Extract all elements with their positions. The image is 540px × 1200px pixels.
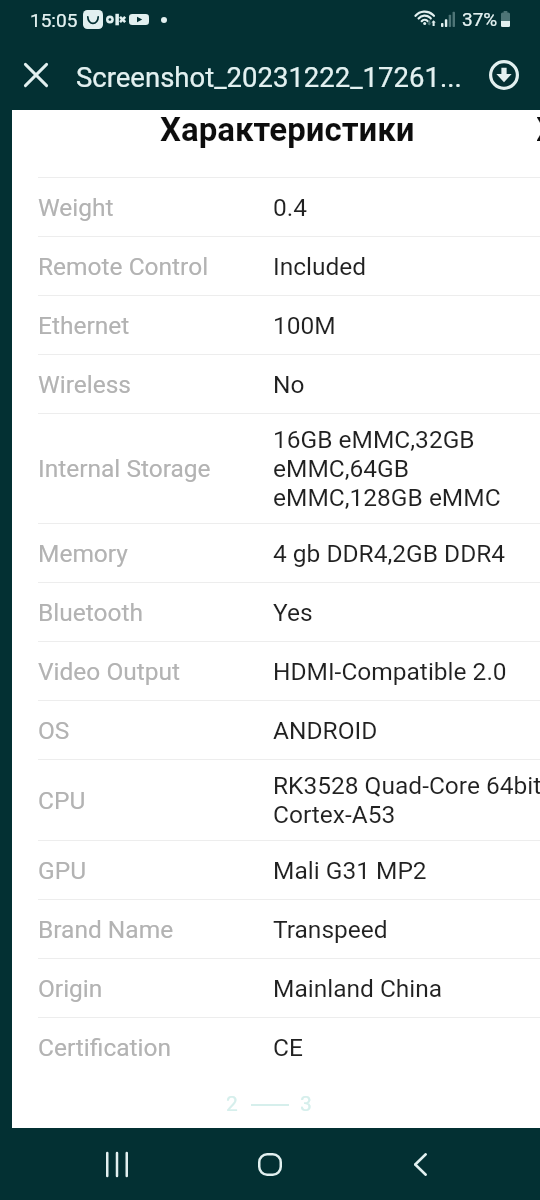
staticText: Ethernet xyxy=(38,311,130,340)
staticText: 37% xyxy=(462,8,498,30)
button[interactable]: Remote Control xyxy=(38,248,540,284)
staticText: Brand Name xyxy=(38,915,174,944)
staticText: Mainland China xyxy=(273,974,443,1003)
staticText: Video Output xyxy=(38,657,181,686)
staticText: Included xyxy=(273,252,367,281)
staticText: Memory xyxy=(38,539,128,568)
staticText: Screenshot_20231222_17261... xyxy=(76,61,462,93)
button[interactable]: Close xyxy=(12,51,60,99)
button[interactable]: Ethernet xyxy=(38,307,540,343)
staticText: Weight xyxy=(38,193,114,222)
button[interactable]: GPU xyxy=(38,852,540,888)
staticText: Origin xyxy=(38,974,103,1003)
button[interactable]: Brand Name xyxy=(38,911,540,947)
staticText: 0.4 xyxy=(273,193,307,222)
staticText: Yes xyxy=(273,598,313,627)
staticText: CE xyxy=(273,1033,303,1062)
button[interactable]: CPU xyxy=(38,771,540,829)
button[interactable]: Wireless xyxy=(38,366,540,402)
staticText: Transpeed xyxy=(273,915,388,944)
button[interactable]: Home xyxy=(240,1134,300,1194)
staticText: CPU xyxy=(38,786,86,815)
staticText: RK3528 Quad-Core 64bit Cortex-A53 xyxy=(273,771,540,829)
button[interactable]: Internal Storage xyxy=(38,425,540,512)
staticText: HDMI-Compatible 2.0 xyxy=(273,657,507,686)
button[interactable]: Recent apps xyxy=(87,1134,147,1194)
staticText: OS xyxy=(38,716,70,745)
staticText: 16GB eMMC,32GB eMMC,64GB eMMC,128GB eMMC xyxy=(273,425,501,512)
staticText: 4 gb DDR4,2GB DDR4 xyxy=(273,539,506,568)
staticText: 100M xyxy=(273,311,336,340)
staticText: 2 xyxy=(226,1092,238,1117)
staticText: Характеристики xyxy=(160,110,415,149)
staticText: Характеристики xyxy=(537,110,539,150)
staticText: ANDROID xyxy=(273,716,378,745)
staticText: GPU xyxy=(38,856,87,885)
staticText: Bluetooth xyxy=(38,598,143,627)
button[interactable]: Back xyxy=(390,1134,450,1194)
button[interactable]: Video Output xyxy=(38,653,540,689)
staticText: 3 xyxy=(300,1092,312,1117)
button[interactable]: Memory xyxy=(38,535,540,571)
staticText: Certification xyxy=(38,1033,172,1062)
button[interactable]: Weight xyxy=(38,189,540,225)
staticText: 15:05 xyxy=(30,9,78,31)
staticText: Internal Storage xyxy=(38,454,211,483)
button[interactable]: Download xyxy=(480,51,528,99)
button[interactable]: Certification xyxy=(38,1029,540,1065)
button[interactable]: Origin xyxy=(38,970,540,1006)
button[interactable]: OS xyxy=(38,712,540,748)
staticText: Mali G31 MP2 xyxy=(273,856,427,885)
staticText: Remote Control xyxy=(38,252,209,281)
staticText: Wireless xyxy=(38,370,131,399)
staticText: No xyxy=(273,370,305,399)
button[interactable]: Bluetooth xyxy=(38,594,540,630)
